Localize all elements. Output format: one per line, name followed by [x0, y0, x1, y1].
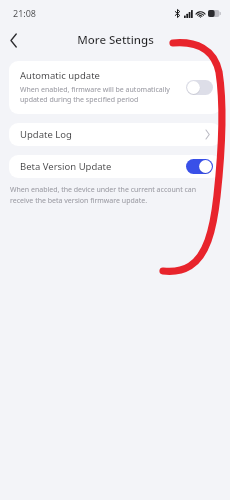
- staticText: Automatic update: [20, 69, 100, 82]
- button[interactable]: Beta Version Update: [9, 155, 221, 178]
- staticText: When enabled, the device under the curre…: [10, 185, 208, 205]
- button[interactable]: Automatic update: [9, 61, 221, 114]
- staticText: When enabled, firmware will be automatic…: [20, 85, 180, 105]
- staticText: Update Log: [20, 128, 205, 141]
- button[interactable]: Update Log: [9, 123, 221, 146]
- staticText: Beta Version Update: [20, 160, 186, 173]
- button[interactable]: Toggle off: [186, 80, 213, 95]
- staticText: More Settings: [77, 32, 154, 48]
- button[interactable]: Back: [0, 26, 28, 54]
- button[interactable]: Toggle on: [186, 159, 213, 174]
- staticText: 21:08: [13, 7, 37, 19]
